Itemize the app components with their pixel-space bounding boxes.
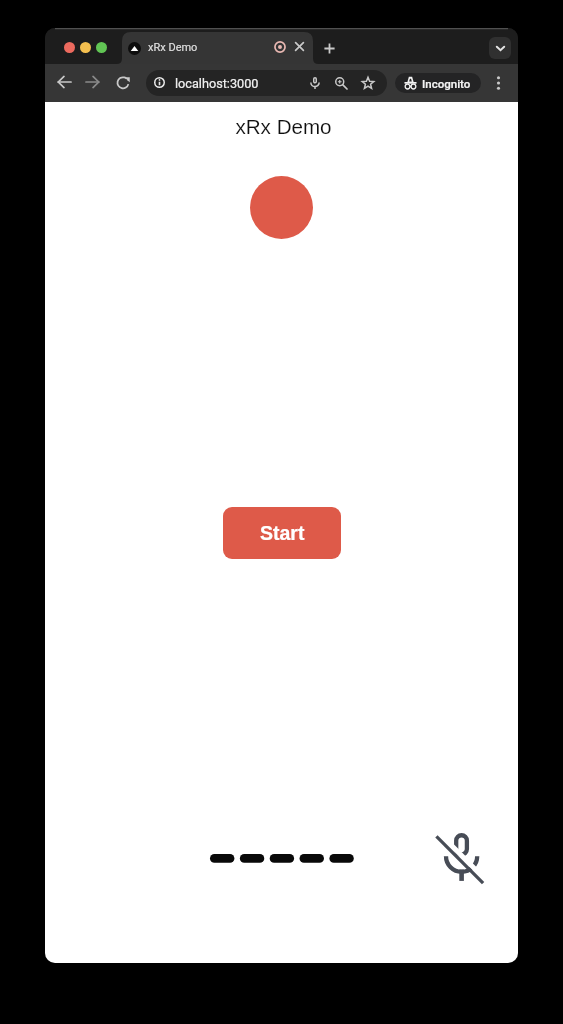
button[interactable]: Close tab — [295, 42, 304, 51]
button[interactable]: Minimise window — [80, 42, 91, 53]
staticText: Incognito — [422, 77, 471, 90]
staticText: xRx Demo — [148, 41, 198, 54]
staticText: xRx Demo — [47, 115, 518, 138]
button[interactable]: xRx Demo — [122, 32, 313, 64]
staticText: Start — [260, 522, 305, 544]
button[interactable]: Tab is recording — [274, 41, 286, 53]
button[interactable]: Reload — [114, 73, 132, 91]
staticText: localhost:3000 — [175, 76, 259, 91]
button[interactable]: Search with Google Lens — [334, 76, 348, 90]
button[interactable]: Customise and control Google Chrome — [490, 73, 506, 93]
button[interactable]: Incognito — [395, 73, 481, 93]
button[interactable]: Close window — [64, 42, 75, 53]
button[interactable]: Voice search — [308, 76, 322, 90]
button[interactable]: Microphone muted — [434, 833, 486, 885]
button[interactable]: Back — [55, 73, 73, 91]
button[interactable]: Forward — [84, 73, 102, 91]
button[interactable]: Bookmark this tab — [361, 76, 375, 90]
button[interactable]: New tab — [319, 38, 339, 58]
button[interactable]: Start — [223, 507, 341, 559]
button[interactable]: Maximise window — [96, 42, 107, 53]
button[interactable]: Search tabs — [489, 37, 511, 59]
button[interactable]: localhost:3000 — [146, 70, 387, 96]
